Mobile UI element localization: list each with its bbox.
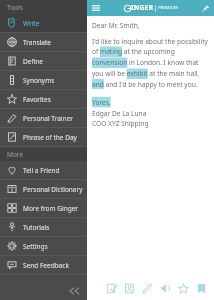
button[interactable]: Write: [0, 14, 87, 32]
staticText: Phrase of the Day: [23, 133, 77, 142]
button[interactable]: Send Feedback: [0, 256, 87, 274]
staticText: Tell a Friend: [23, 166, 60, 175]
button[interactable]: Define: [0, 52, 87, 70]
staticText: COO XYZ Shipping: [92, 119, 149, 128]
button[interactable]: Favorite: [174, 279, 192, 297]
button[interactable]: Personal Trainer: [0, 109, 87, 127]
staticText: INGER: [131, 3, 153, 13]
staticText: Synonyms: [23, 76, 55, 85]
staticText: Edgar De La Luna: [92, 109, 147, 118]
staticText: Tools: [7, 3, 23, 12]
button[interactable]: Check: [102, 279, 120, 297]
button[interactable]: Edit: [138, 279, 156, 297]
button[interactable]: Tutorials: [0, 218, 87, 236]
button[interactable]: Settings: [0, 237, 87, 255]
button[interactable]: Read aloud: [156, 279, 174, 297]
staticText: Settings: [23, 242, 48, 251]
staticText: I'd like to inquire about the possibilit…: [92, 37, 209, 89]
staticText: Favorites: [23, 95, 51, 104]
staticText: Personal Trainer: [23, 114, 73, 123]
staticText: More: [7, 150, 24, 159]
button[interactable]: Pin: [200, 3, 211, 14]
button[interactable]: Personal Dictionary: [0, 180, 87, 198]
staticText: Dear Mr. Smith,: [92, 21, 140, 30]
staticText: More from Ginger: [23, 204, 79, 213]
button[interactable]: Tell a Friend: [0, 161, 87, 179]
button[interactable]: Dictionary: [192, 279, 210, 297]
staticText: Yores,: [92, 98, 111, 107]
staticText: PREMIUM: [158, 5, 178, 11]
button[interactable]: Collapse menu: [61, 282, 87, 300]
staticText: Send Feedback: [23, 261, 69, 270]
button[interactable]: Rephrase: [120, 279, 138, 297]
button[interactable]: Favorites: [0, 90, 87, 108]
button[interactable]: Translate: [0, 33, 87, 51]
staticText: Personal Dictionary: [23, 185, 83, 194]
staticText: Tutorials: [23, 223, 50, 232]
button[interactable]: More from Ginger: [0, 199, 87, 217]
staticText: Translate: [23, 38, 51, 47]
staticText: Define: [23, 57, 44, 66]
button[interactable]: Menu: [90, 2, 102, 14]
button[interactable]: Phrase of the Day: [0, 128, 87, 146]
staticText: Write: [23, 19, 40, 28]
button[interactable]: Synonyms: [0, 71, 87, 89]
